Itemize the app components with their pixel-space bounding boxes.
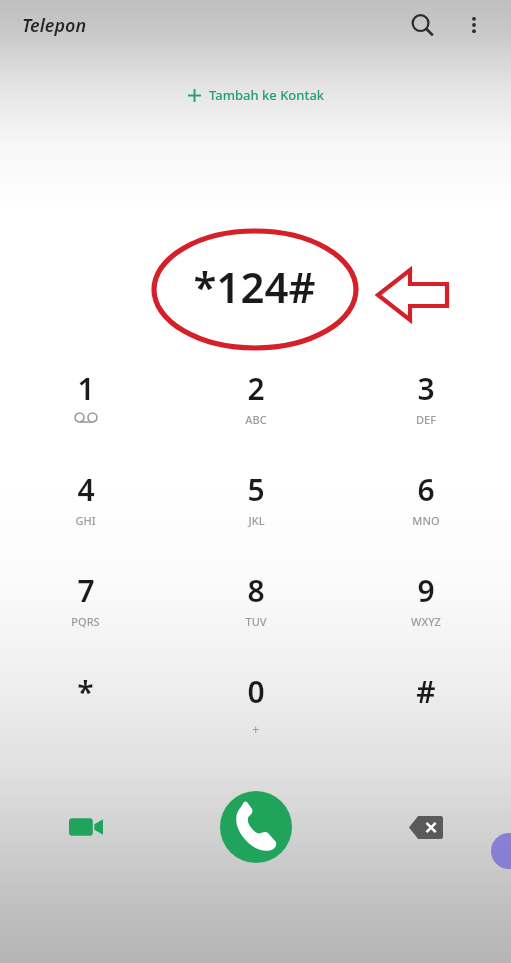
button[interactable]: * bbox=[0, 661, 171, 762]
staticText: TUV bbox=[245, 614, 267, 629]
staticText: + bbox=[252, 720, 260, 738]
button[interactable]: 0 bbox=[171, 661, 341, 762]
button[interactable]: 8 bbox=[171, 560, 341, 661]
button[interactable]: Backspace bbox=[341, 780, 511, 874]
button[interactable]: 3 bbox=[341, 358, 511, 459]
staticText: # bbox=[416, 671, 436, 712]
staticText: * bbox=[77, 671, 94, 712]
button[interactable]: Search bbox=[401, 4, 443, 46]
staticText: MNO bbox=[412, 513, 440, 528]
button[interactable]: 2 bbox=[171, 358, 341, 459]
staticText: DEF bbox=[416, 412, 436, 427]
staticText: 4 bbox=[77, 469, 95, 510]
staticText: 3 bbox=[417, 368, 435, 409]
button[interactable]: 5 bbox=[171, 459, 341, 560]
button[interactable]: 9 bbox=[341, 560, 511, 661]
button[interactable]: More options bbox=[453, 4, 495, 46]
button[interactable]: # bbox=[341, 661, 511, 762]
button[interactable]: 1 bbox=[0, 358, 171, 459]
staticText: 8 bbox=[247, 570, 265, 611]
staticText: 9 bbox=[417, 570, 435, 611]
staticText: 7 bbox=[77, 570, 95, 611]
staticText: Telepon bbox=[22, 13, 87, 38]
staticText: PQRS bbox=[71, 614, 100, 629]
staticText: GHI bbox=[75, 513, 96, 528]
staticText: 2 bbox=[247, 368, 265, 409]
staticText: ABC bbox=[245, 412, 267, 427]
button[interactable]: Call bbox=[220, 791, 292, 863]
button[interactable]: Video call bbox=[0, 780, 171, 874]
button[interactable]: 7 bbox=[0, 560, 171, 661]
staticText: 1 bbox=[77, 368, 95, 409]
staticText: 6 bbox=[417, 469, 435, 510]
staticText: 0 bbox=[247, 671, 265, 712]
staticText: Tambah ke Kontak bbox=[209, 86, 325, 104]
button[interactable]: 4 bbox=[0, 459, 171, 560]
staticText: 5 bbox=[247, 469, 265, 510]
staticText: WXYZ bbox=[411, 614, 441, 629]
staticText: JKL bbox=[248, 513, 265, 528]
button[interactable]: Tambah ke Kontak bbox=[177, 82, 335, 108]
staticText: *124# bbox=[193, 258, 316, 315]
button[interactable]: 6 bbox=[341, 459, 511, 560]
